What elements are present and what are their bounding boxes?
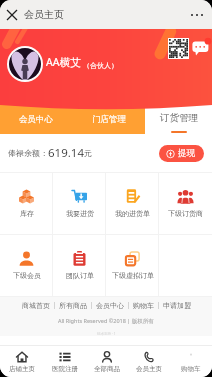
staticText: 我要进货: [66, 209, 94, 218]
button[interactable]: 我要进货: [53, 173, 106, 234]
staticText: （合伙人）: [83, 61, 118, 70]
staticText: 所有商品: [59, 301, 87, 310]
button[interactable]: 购物车: [129, 301, 158, 310]
staticText: 会员主页: [24, 8, 64, 21]
button[interactable]: Close: [7, 10, 17, 20]
staticText: 会员中心: [19, 114, 53, 125]
button[interactable]: Messages: [192, 38, 212, 58]
button[interactable]: 所有商品: [55, 301, 91, 310]
staticText: 全部商品: [94, 365, 120, 373]
button[interactable]: 会员中心: [0, 105, 72, 134]
staticText: 我的进货单: [115, 209, 150, 218]
staticText: 元: [84, 148, 92, 158]
button[interactable]: 团队订单: [53, 235, 106, 296]
staticText: 店铺主页: [9, 365, 35, 373]
button[interactable]: 提现: [159, 145, 204, 162]
staticText: 下级订货商: [168, 209, 203, 218]
button[interactable]: 商城首页: [18, 301, 54, 310]
button[interactable]: 我的进货单: [106, 173, 159, 234]
staticText: 库存: [20, 209, 34, 218]
staticText: 会员中心: [96, 301, 124, 310]
button[interactable]: 申请加盟: [159, 301, 195, 310]
button[interactable]: 会员主页: [128, 346, 170, 377]
button[interactable]: More options: [191, 14, 203, 16]
staticText: 团队订单: [66, 271, 94, 280]
button[interactable]: 购物车: [170, 346, 212, 377]
button[interactable]: 全部商品: [86, 346, 128, 377]
button[interactable]: 医院注册: [43, 346, 86, 377]
staticText: 技术支持 · 1: [97, 331, 116, 336]
staticText: 申请加盟: [163, 301, 191, 310]
button[interactable]: QR code: [169, 39, 188, 58]
staticText: 门店管理: [92, 114, 126, 125]
staticText: 商城首页: [22, 301, 50, 310]
button[interactable]: 店铺主页: [0, 346, 43, 377]
staticText: 订货管理: [160, 112, 198, 124]
staticText: 下级虚拟订单: [112, 271, 154, 280]
staticText: 医院注册: [52, 365, 78, 373]
staticText: 619.14: [48, 145, 84, 161]
staticText: 提现: [178, 148, 195, 159]
button[interactable]: 下级虚拟订单: [106, 235, 159, 296]
staticText: 购物车: [133, 301, 154, 310]
button[interactable]: 下级订货商: [159, 173, 212, 234]
button[interactable]: 库存: [0, 173, 53, 234]
staticText: AA横艾: [46, 55, 81, 69]
button[interactable]: User avatar: [9, 48, 41, 80]
button[interactable]: 会员中心: [92, 301, 128, 310]
button[interactable]: 订货管理: [145, 105, 212, 134]
staticText: 俸禄余额：: [8, 148, 48, 158]
staticText: 下级会员: [13, 271, 41, 280]
button[interactable]: 门店管理: [72, 105, 145, 134]
staticText: All Rights Reserved ©2018 | 版权所有: [58, 317, 154, 325]
staticText: 购物车: [181, 365, 201, 373]
staticText: 会员主页: [136, 365, 162, 373]
button[interactable]: 下级会员: [0, 235, 53, 296]
